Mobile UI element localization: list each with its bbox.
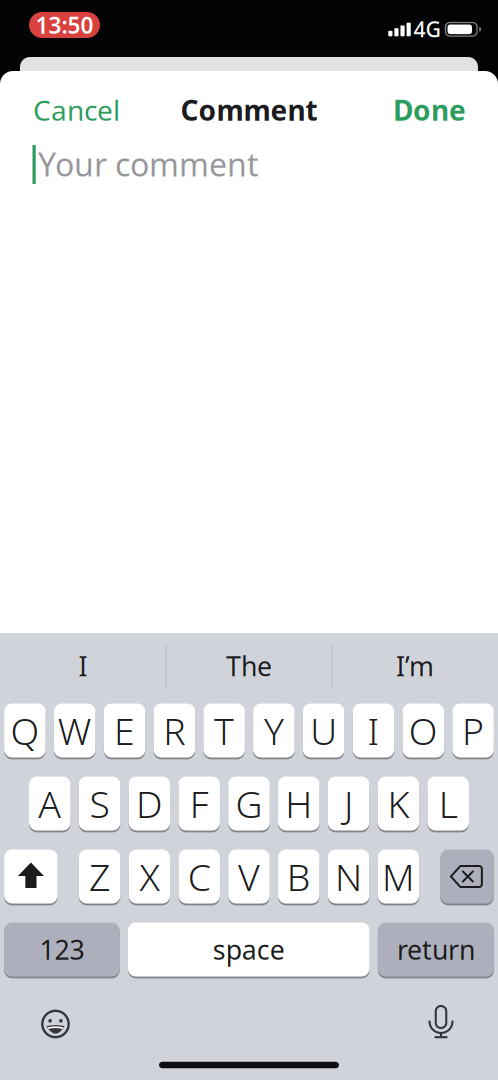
button[interactable]: return [378, 922, 494, 976]
button[interactable]: Dictation [426, 1006, 456, 1040]
staticText: U [310, 706, 337, 755]
staticText: L [439, 779, 458, 828]
button[interactable]: K [378, 776, 419, 830]
button[interactable]: I [4, 639, 162, 693]
button[interactable]: Y [253, 703, 295, 757]
button[interactable]: H [278, 776, 320, 830]
staticText: D [136, 779, 163, 828]
staticText: M [382, 852, 415, 901]
button[interactable]: D [129, 776, 170, 830]
staticText: T [214, 706, 234, 755]
button[interactable]: W [54, 703, 95, 757]
button[interactable]: G [228, 776, 270, 830]
staticText: R [163, 706, 185, 755]
staticText: E [114, 706, 135, 755]
button[interactable]: N [328, 849, 369, 903]
button[interactable]: M [378, 849, 419, 903]
button[interactable]: Done [393, 83, 466, 137]
staticText: I [367, 706, 379, 755]
staticText: 123 [39, 932, 84, 967]
staticText: H [285, 779, 312, 828]
button[interactable]: Emoji [38, 1007, 72, 1041]
staticText: F [190, 779, 209, 828]
button[interactable]: Return to call [29, 10, 100, 40]
staticText: B [287, 852, 311, 901]
button[interactable]: S [79, 776, 120, 830]
staticText: Cancel [33, 91, 120, 129]
button[interactable]: I’m [336, 639, 494, 693]
button[interactable]: The [170, 639, 328, 693]
staticText: A [38, 779, 61, 828]
button[interactable]: J [328, 776, 369, 830]
staticText: Done [393, 91, 466, 129]
button[interactable]: C [178, 849, 220, 903]
button[interactable]: O [402, 703, 444, 757]
staticText: C [188, 852, 211, 901]
staticText: P [462, 706, 484, 755]
staticText: G [235, 779, 262, 828]
button[interactable]: Your comment [0, 135, 498, 193]
staticText: The [226, 648, 272, 684]
button[interactable]: U [303, 703, 344, 757]
staticText: V [238, 852, 260, 901]
button[interactable]: E [104, 703, 145, 757]
button[interactable]: space [128, 922, 370, 976]
button[interactable]: X [129, 849, 170, 903]
staticText: X [139, 852, 159, 901]
button[interactable]: L [427, 776, 469, 830]
button[interactable]: A [29, 776, 70, 830]
button[interactable]: Q [4, 703, 46, 757]
staticText: 4G [413, 15, 441, 43]
button[interactable]: V [228, 849, 270, 903]
staticText: return [397, 932, 475, 967]
staticText: space [213, 932, 285, 967]
staticText: J [344, 779, 353, 828]
staticText: S [90, 779, 110, 828]
button[interactable]: T [203, 703, 245, 757]
staticText: Q [10, 706, 39, 755]
button[interactable]: Cancel [33, 83, 120, 137]
button[interactable]: P [452, 703, 494, 757]
staticText: I’m [396, 648, 434, 684]
staticText: Comment [180, 91, 317, 129]
staticText: Z [89, 852, 110, 901]
button[interactable]: B [278, 849, 319, 903]
button[interactable]: Shift [4, 849, 58, 903]
button[interactable]: F [178, 776, 220, 830]
button[interactable]: Delete [440, 849, 494, 903]
staticText: 13:50 [35, 10, 93, 40]
staticText: W [58, 706, 92, 755]
button[interactable]: R [153, 703, 195, 757]
button[interactable]: Z [79, 849, 120, 903]
staticText: Y [264, 706, 284, 755]
button[interactable]: I [353, 703, 394, 757]
button[interactable]: 123 [4, 922, 120, 976]
staticText: K [387, 779, 409, 828]
staticText: Your comment [38, 143, 259, 185]
staticText: I [78, 648, 87, 684]
staticText: O [409, 706, 438, 755]
staticText: N [335, 852, 362, 901]
